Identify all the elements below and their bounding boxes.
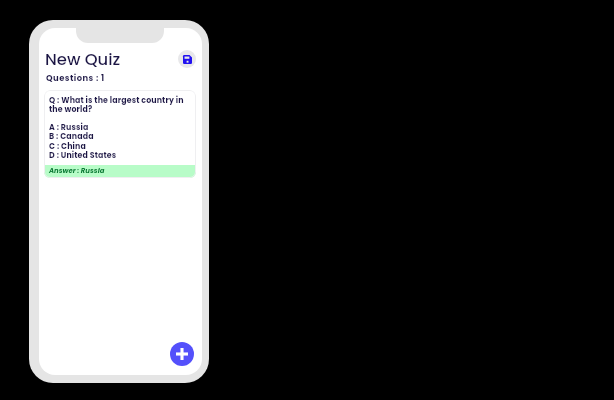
staticText: Q : What is the largest country in the w… xyxy=(49,96,191,114)
staticText: D : United States xyxy=(49,151,117,160)
button[interactable]: Save quiz xyxy=(178,50,196,68)
staticText: New Quiz xyxy=(45,52,121,70)
staticText: Questions : 1 xyxy=(46,74,105,84)
button[interactable]: Q : What is the largest country in the w… xyxy=(44,90,196,178)
staticText: B : Canada xyxy=(49,132,94,141)
staticText: C : China xyxy=(49,142,86,151)
button[interactable]: Add question xyxy=(170,342,194,366)
staticText: A : Russia xyxy=(49,123,89,132)
staticText: Answer : Russia xyxy=(49,166,105,175)
